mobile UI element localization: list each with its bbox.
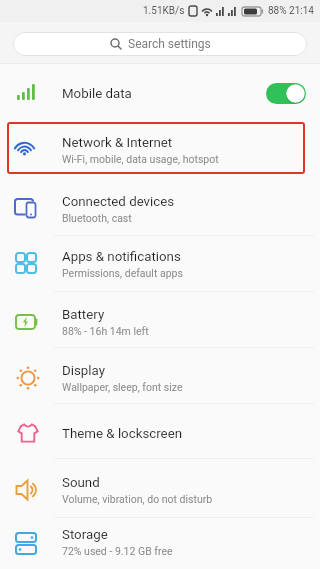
staticText: 1.51KB/s — [143, 5, 185, 17]
button[interactable]: Connected devices — [0, 177, 320, 236]
staticText: 88% - 16h 14m left — [62, 325, 149, 337]
button[interactable]: Mobile data — [0, 64, 320, 123]
button[interactable]: Theme & lockscreen — [0, 404, 320, 459]
staticText: Theme & lockscreen — [62, 426, 183, 442]
staticText: 72% used - 9.12 GB free — [62, 545, 173, 557]
staticText: Permissions, default apps — [62, 267, 183, 279]
staticText: Battery — [62, 307, 105, 323]
button[interactable]: Network & Internet — [0, 123, 320, 177]
staticText: Sound — [62, 475, 100, 491]
button[interactable]: Sound — [0, 459, 320, 518]
staticText: Search settings — [128, 37, 211, 51]
button[interactable]: Battery — [0, 292, 320, 348]
button[interactable]: Apps & notifications — [0, 236, 320, 292]
button[interactable]: Storage — [0, 518, 320, 569]
staticText: Wi-Fi, mobile, data usage, hotspot — [62, 153, 219, 165]
staticText: Mobile data — [62, 86, 132, 102]
staticText: Display — [62, 363, 105, 379]
staticText: Apps & notifications — [62, 249, 181, 265]
button[interactable]: Search settings — [13, 32, 307, 56]
staticText: Volume, vibration, do not disturb — [62, 493, 213, 505]
staticText: Bluetooth, cast — [62, 212, 132, 224]
staticText: Network & Internet — [62, 135, 173, 151]
staticText: Connected devices — [62, 194, 175, 210]
staticText: Storage — [62, 527, 108, 543]
button[interactable]: Display — [0, 348, 320, 404]
staticText: 88% 21:14 — [268, 5, 314, 17]
staticText: Wallpaper, sleep, font size — [62, 381, 183, 393]
